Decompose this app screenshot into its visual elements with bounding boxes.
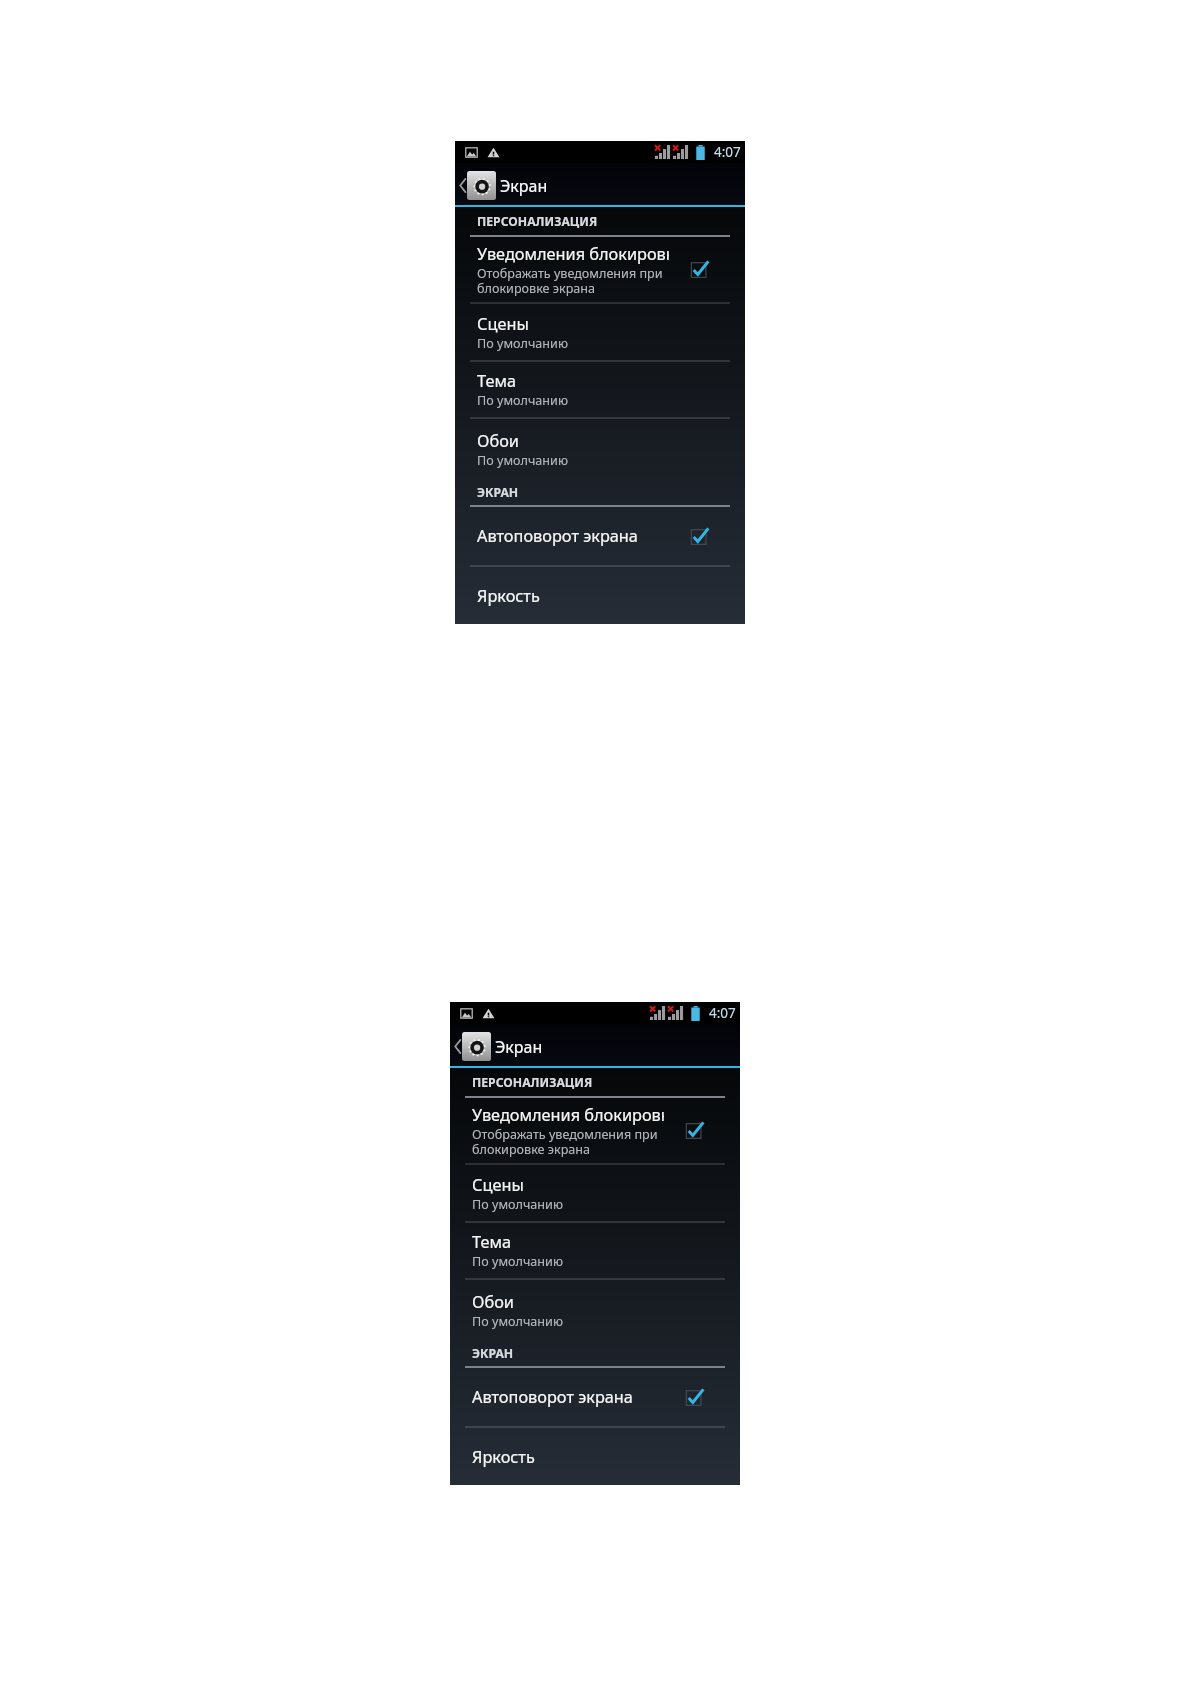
button[interactable]: Обои (455, 419, 745, 479)
button[interactable]: Уведомления блокировки экрана (455, 237, 745, 302)
button[interactable]: Тема (455, 362, 745, 417)
button[interactable]: Сцены (450, 1165, 740, 1221)
staticText: 4:07 (714, 143, 741, 161)
button[interactable]: Яркость (455, 567, 745, 624)
button[interactable]: Автоповорот экрана (455, 507, 745, 565)
staticText: Яркость (472, 1446, 535, 1468)
staticText: По умолчанию (472, 1313, 563, 1330)
button[interactable]: Автоповорот экрана (686, 1389, 703, 1406)
button[interactable]: Обои (450, 1280, 740, 1340)
staticText: ЭКРАН (477, 484, 519, 501)
button[interactable]: Уведомления блокировки экрана (450, 1098, 740, 1163)
button[interactable]: Яркость (450, 1428, 740, 1485)
button[interactable]: Автоповорот экрана (450, 1368, 740, 1426)
button[interactable]: Экран (450, 1024, 740, 1066)
staticText: Автоповорот экрана (477, 525, 638, 547)
staticText: По умолчанию (472, 1196, 563, 1213)
staticText: По умолчанию (477, 452, 568, 469)
button[interactable]: Уведомления блокировки экрана (686, 1122, 703, 1139)
button[interactable]: Автоповорот экрана (691, 528, 708, 545)
staticText: Экран (495, 1036, 543, 1058)
staticText: Экран (500, 175, 548, 197)
staticText: Тема (472, 1231, 511, 1253)
staticText: ПЕРСОНАЛИЗАЦИЯ (472, 1074, 593, 1091)
button[interactable]: Тема (450, 1223, 740, 1278)
staticText: Уведомления блокировки экрана (472, 1104, 664, 1126)
staticText: 4:07 (709, 1004, 736, 1022)
staticText: По умолчанию (477, 392, 568, 409)
staticText: Обои (477, 430, 519, 452)
staticText: Автоповорот экрана (472, 1386, 633, 1408)
button[interactable]: Уведомления блокировки экрана (691, 261, 708, 278)
staticText: По умолчанию (472, 1253, 563, 1270)
staticText: Обои (472, 1291, 514, 1313)
staticText: Сцены (477, 313, 529, 335)
staticText: ПЕРСОНАЛИЗАЦИЯ (477, 213, 598, 230)
staticText: Отображать уведомления при блокировке эк… (477, 265, 663, 297)
button[interactable]: Сцены (455, 304, 745, 360)
staticText: Сцены (472, 1174, 524, 1196)
staticText: Уведомления блокировки экрана (477, 243, 669, 265)
staticText: Тема (477, 370, 516, 392)
staticText: ЭКРАН (472, 1345, 514, 1362)
button[interactable]: Экран (455, 163, 745, 205)
staticText: Отображать уведомления при блокировке эк… (472, 1126, 658, 1158)
staticText: Яркость (477, 585, 540, 607)
staticText: По умолчанию (477, 335, 568, 352)
